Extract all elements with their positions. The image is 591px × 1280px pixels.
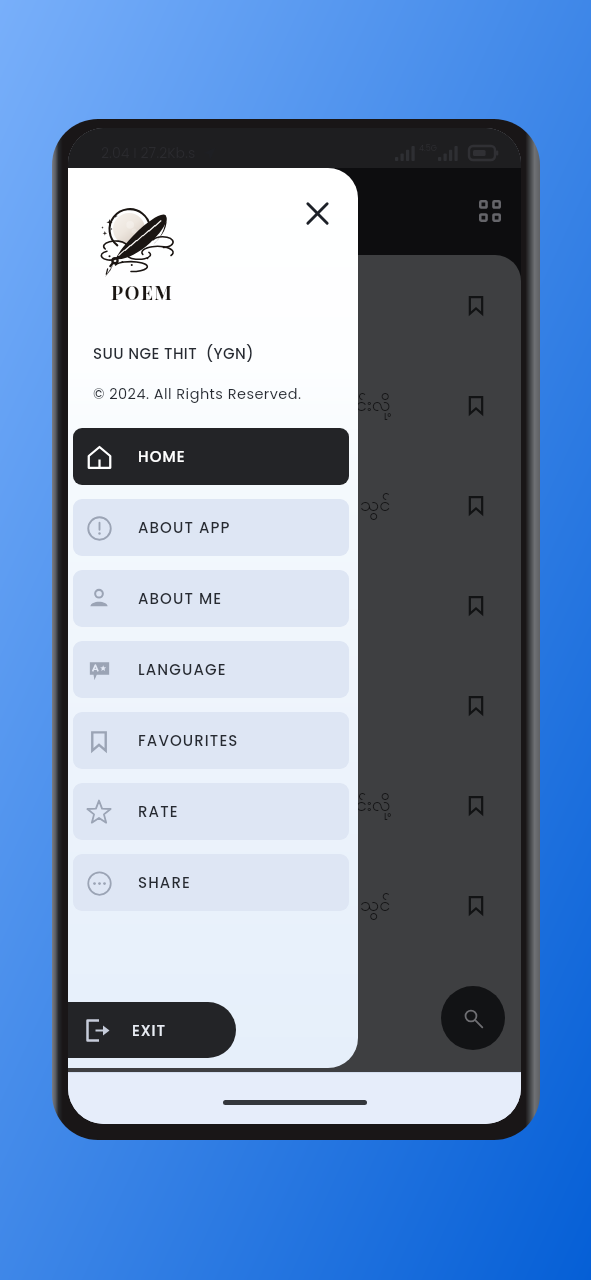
staticText: သွင် <box>360 891 391 920</box>
staticText: © 2024. All Rights Reserved. <box>93 384 302 404</box>
button[interactable]: LANGUAGE <box>73 641 349 698</box>
staticText: သွင် <box>360 491 391 520</box>
button[interactable]: Grid view <box>472 193 508 229</box>
staticText: LANGUAGE <box>138 659 227 680</box>
staticText: ဆောင်းလို့ <box>318 391 391 420</box>
staticText: 4.5G <box>419 143 437 154</box>
button[interactable] <box>68 555 521 655</box>
button[interactable]: RATE <box>73 783 349 840</box>
button[interactable] <box>68 255 521 355</box>
button[interactable]: Search <box>441 986 505 1050</box>
staticText: RATE <box>138 801 179 822</box>
button[interactable]: သွင် <box>68 855 521 955</box>
button[interactable]: သွင် <box>68 455 521 555</box>
staticText: ABOUT ME <box>138 588 223 609</box>
button[interactable]: ABOUT ME <box>73 570 349 627</box>
staticText: EXIT <box>132 1020 166 1041</box>
staticText: POEM <box>111 279 174 304</box>
button[interactable]: Close drawer <box>297 193 337 233</box>
staticText: 2.04 I 27.2Kb.s <box>101 143 196 163</box>
staticText: SUU NGE THIT (YGN) <box>93 343 254 364</box>
button[interactable]: ဆောင်းလို့ <box>68 355 521 455</box>
staticText: FAVOURITES <box>138 730 239 751</box>
button[interactable]: ဆောင်းလို့ <box>68 755 521 855</box>
staticText: ဆောင်းလို့ <box>318 791 391 820</box>
staticText: SHARE <box>138 872 191 893</box>
button[interactable]: HOME <box>73 428 349 485</box>
staticText: HOME <box>138 446 186 467</box>
button[interactable]: FAVOURITES <box>73 712 349 769</box>
button[interactable] <box>68 655 521 755</box>
staticText: ABOUT APP <box>138 517 231 538</box>
button[interactable]: SHARE <box>73 854 349 911</box>
button[interactable]: EXIT <box>68 1002 236 1058</box>
button[interactable]: ABOUT APP <box>73 499 349 556</box>
